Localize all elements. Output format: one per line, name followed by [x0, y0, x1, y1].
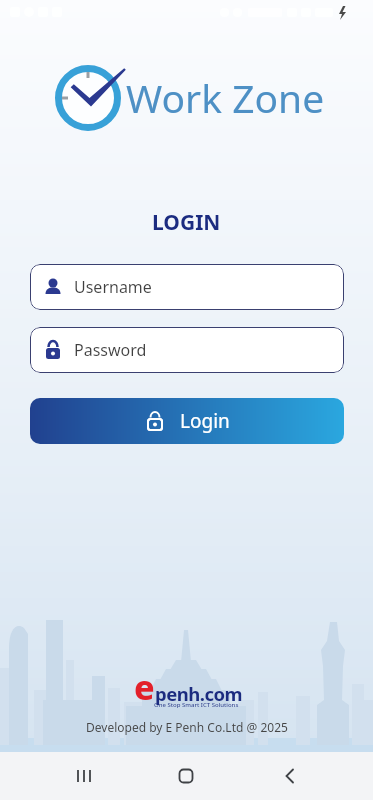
- button[interactable]: Login: [30, 398, 344, 444]
- staticText: e: [134, 664, 155, 710]
- button[interactable]: [268, 752, 312, 800]
- button[interactable]: Username: [30, 264, 344, 310]
- staticText: Username: [74, 276, 152, 298]
- staticText: Developed by E Penh Co.Ltd @ 2025: [86, 719, 288, 735]
- staticText: Login: [180, 408, 230, 434]
- staticText: Password: [74, 339, 147, 361]
- staticText: LOGIN: [152, 208, 221, 237]
- staticText: Work Zone: [126, 71, 325, 124]
- staticText: penh.com: [155, 681, 243, 706]
- staticText: One Stop Smart ICT Solutions: [154, 701, 239, 709]
- button[interactable]: [164, 752, 208, 800]
- button[interactable]: [62, 752, 106, 800]
- button[interactable]: Password: [30, 327, 344, 373]
